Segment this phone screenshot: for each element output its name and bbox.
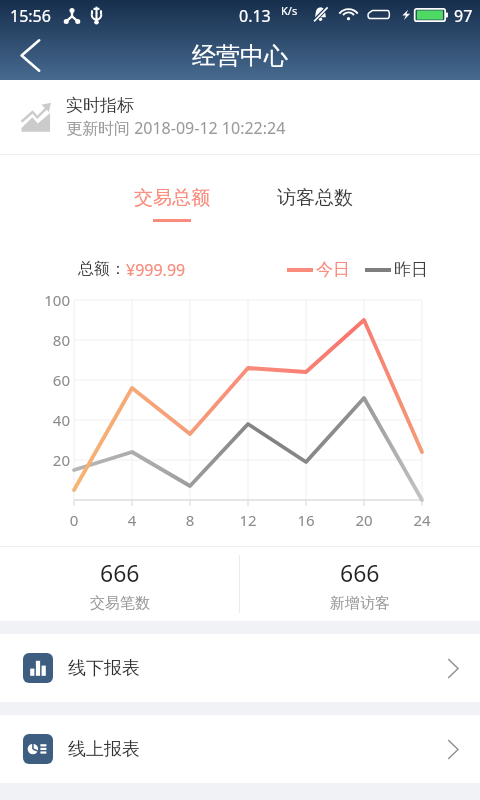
staticText: 实时指标 <box>66 95 134 116</box>
staticText: 24 <box>402 510 442 530</box>
staticText: 20 <box>10 450 70 470</box>
staticText: ¥999.99 <box>126 259 186 281</box>
staticText: 60 <box>10 370 70 390</box>
staticText: 40 <box>10 410 70 430</box>
button[interactable]: 666 <box>240 556 480 612</box>
staticText: 访客总数 <box>277 186 353 210</box>
staticText: 昨日 <box>394 259 428 280</box>
button[interactable]: Back <box>6 31 54 79</box>
staticText: 交易总额 <box>134 186 210 210</box>
button[interactable]: 交易总额 <box>122 180 222 228</box>
staticText: 97 <box>454 5 473 27</box>
staticText: 8 <box>170 510 210 530</box>
staticText: 线上报表 <box>68 738 140 761</box>
staticText: 总额： <box>78 259 126 279</box>
staticText: 4 <box>112 510 152 530</box>
staticText: 666 <box>340 557 380 588</box>
staticText: K/s <box>281 3 298 18</box>
staticText: 666 <box>100 557 140 588</box>
staticText: 更新时间 2018-09-12 10:22:24 <box>66 117 286 139</box>
staticText: 16 <box>286 510 326 530</box>
staticText: 15:56 <box>10 5 51 27</box>
button[interactable]: 666 <box>0 556 239 612</box>
button[interactable]: 访客总数 <box>265 180 365 228</box>
staticText: 线下报表 <box>68 657 140 680</box>
staticText: 0 <box>54 510 94 530</box>
staticText: 交易笔数 <box>90 594 150 613</box>
staticText: 新增访客 <box>330 594 390 613</box>
staticText: 经营中心 <box>192 41 288 71</box>
staticText: 100 <box>10 290 70 310</box>
button[interactable]: 线上报表 <box>0 715 480 783</box>
staticText: 今日 <box>316 259 350 280</box>
staticText: 20 <box>344 510 384 530</box>
staticText: 80 <box>10 330 70 350</box>
staticText: 12 <box>228 510 268 530</box>
button[interactable]: 线下报表 <box>0 634 480 702</box>
staticText: 0.13 <box>239 5 271 27</box>
